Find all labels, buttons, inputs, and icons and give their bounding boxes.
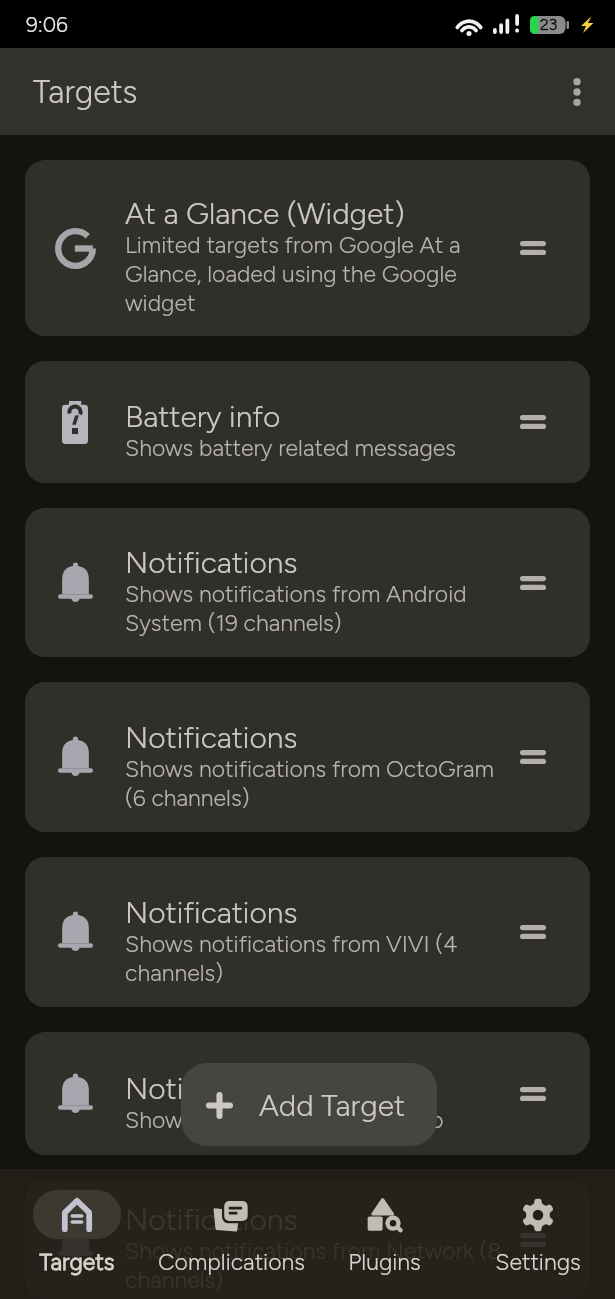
staticText: Notifications bbox=[125, 1070, 298, 1106]
other: Reorder bbox=[476, 361, 590, 483]
staticText: 9:06 bbox=[26, 12, 68, 37]
button[interactable]: Targets bbox=[1, 1169, 153, 1276]
staticText: Battery info bbox=[125, 398, 281, 434]
other: Reorder bbox=[476, 682, 590, 832]
staticText: Shows notifications from Network (8 chan… bbox=[125, 1237, 510, 1294]
other: Reorder bbox=[476, 1032, 590, 1155]
staticText: Shows notifications from Sleep bbox=[125, 1106, 444, 1134]
button[interactable]: Notifications bbox=[25, 508, 590, 657]
staticText: Limited targets from Google At a Glance,… bbox=[125, 231, 510, 317]
other: Reorder bbox=[476, 1180, 590, 1299]
staticText: Notifications bbox=[125, 1201, 298, 1237]
staticText: Settings bbox=[495, 1248, 581, 1276]
button[interactable]: Battery info bbox=[25, 361, 590, 483]
button[interactable]: At a Glance (Widget) bbox=[25, 160, 590, 336]
other: Reorder bbox=[476, 508, 590, 657]
other: Reorder bbox=[476, 857, 590, 1007]
staticText: At a Glance (Widget) bbox=[125, 195, 405, 231]
staticText: Shows notifications from Android System … bbox=[125, 580, 510, 637]
staticText: 23 bbox=[540, 15, 558, 34]
staticText: Add Target bbox=[259, 1087, 406, 1123]
button[interactable]: Notifications bbox=[25, 1180, 590, 1299]
button[interactable]: More options bbox=[551, 66, 603, 118]
button[interactable]: Notifications bbox=[25, 1032, 590, 1155]
staticText: Complications bbox=[158, 1248, 305, 1276]
staticText: Shows notifications from VIVI (4 channel… bbox=[125, 930, 510, 987]
staticText: Shows notifications from OctoGram (6 cha… bbox=[125, 755, 510, 812]
button[interactable]: Settings bbox=[462, 1169, 614, 1276]
other: Reorder bbox=[476, 160, 590, 336]
staticText: Notifications bbox=[125, 894, 298, 930]
button[interactable]: Notifications bbox=[25, 857, 590, 1007]
button[interactable]: Plugins bbox=[308, 1169, 460, 1276]
button[interactable]: Complications bbox=[155, 1169, 307, 1276]
button[interactable]: Notifications bbox=[25, 682, 590, 832]
staticText: Notifications bbox=[125, 719, 298, 755]
staticText: Targets bbox=[39, 1248, 115, 1276]
staticText: Shows battery related messages bbox=[125, 434, 456, 462]
staticText: Notifications bbox=[125, 544, 298, 580]
staticText: Plugins bbox=[348, 1248, 421, 1276]
button[interactable]: Add Target bbox=[181, 1063, 437, 1146]
staticText: Targets bbox=[33, 73, 138, 111]
